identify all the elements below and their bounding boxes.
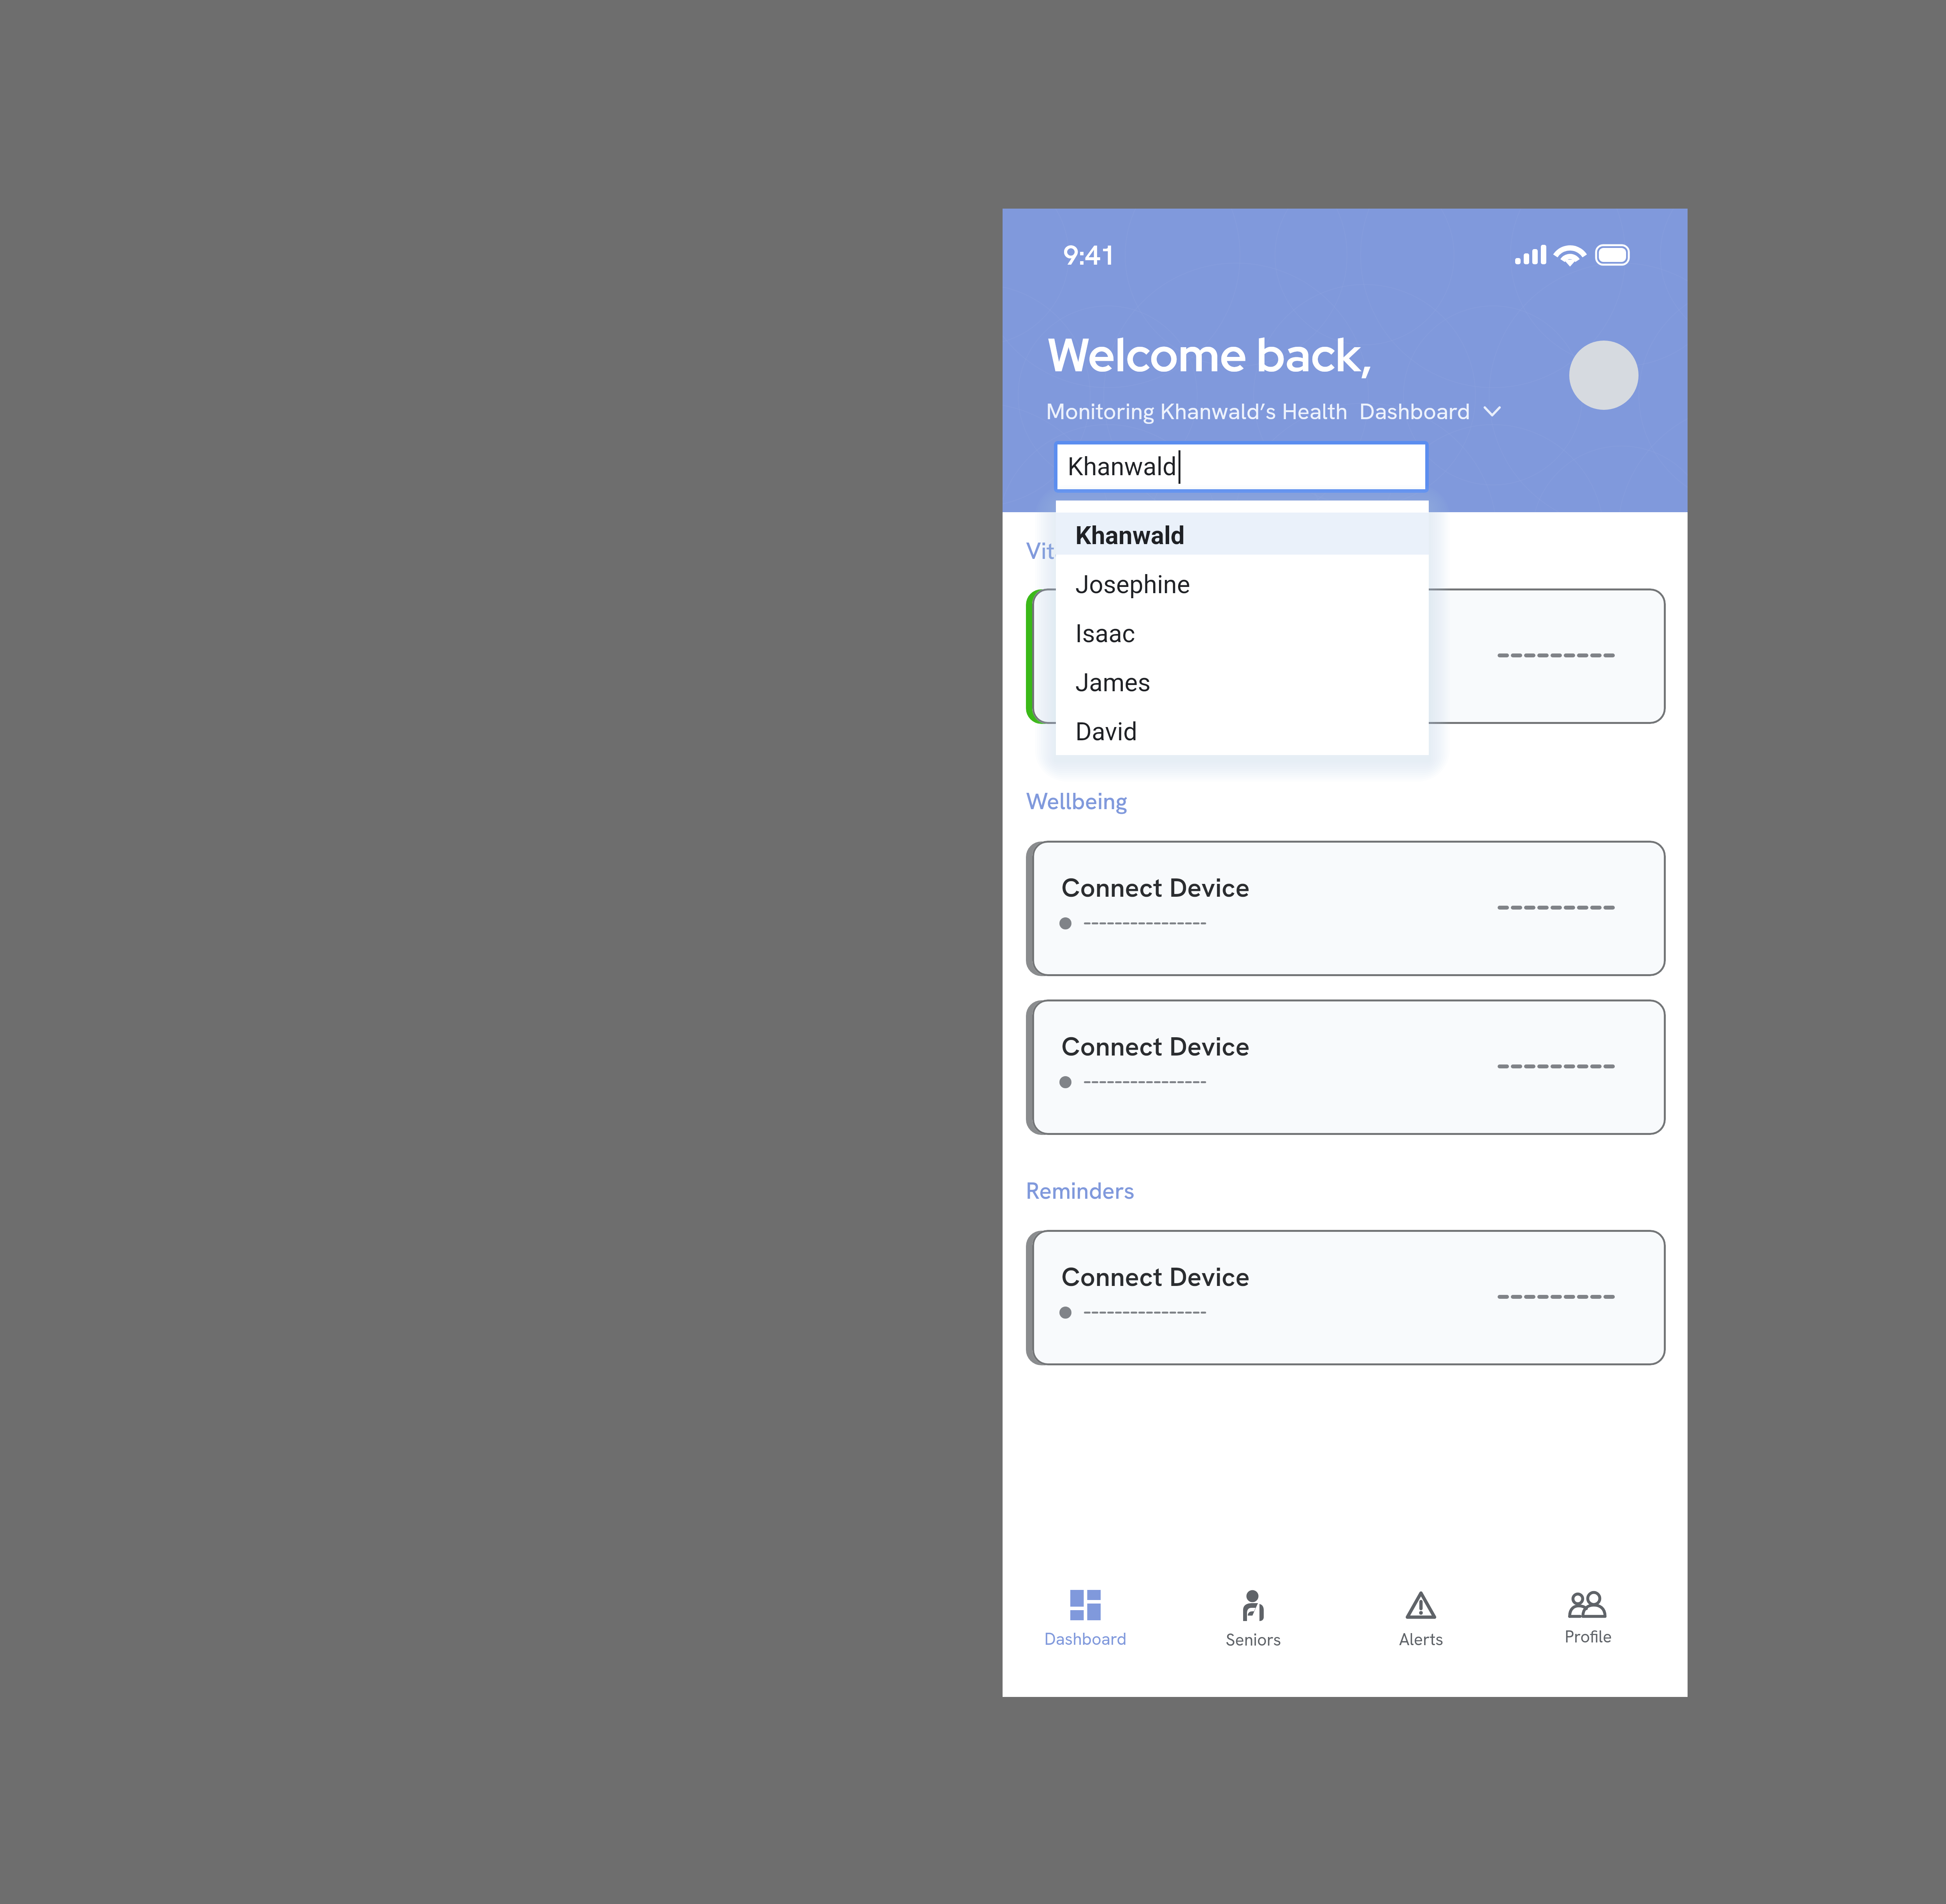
staticText: Profile xyxy=(1565,1626,1612,1648)
button[interactable]: Profile avatar xyxy=(1569,341,1639,410)
staticText: Connect Device xyxy=(1061,1029,1250,1064)
button[interactable]: Khanwald xyxy=(1056,513,1429,562)
button[interactable]: Isaac xyxy=(1056,611,1429,660)
staticText: Connect Device xyxy=(1061,870,1250,905)
button[interactable]: Dashboard xyxy=(1012,1565,1159,1654)
button[interactable]: Seniors xyxy=(1179,1565,1327,1654)
staticText: Seniors xyxy=(1226,1629,1281,1651)
button[interactable]: Connect Device xyxy=(1032,999,1666,1135)
staticText: Isaac xyxy=(1075,619,1135,648)
staticText: Monitoring Khanwald’s Health Dashboard xyxy=(1046,397,1470,426)
button[interactable]: Connect Device xyxy=(1032,1230,1666,1365)
staticText: Josephine xyxy=(1075,570,1190,599)
button[interactable]: Khanwald xyxy=(1057,444,1425,489)
button[interactable]: David xyxy=(1056,709,1429,758)
button[interactable]: Connect Device xyxy=(1032,588,1666,724)
staticText: Connect Device xyxy=(1061,1259,1250,1294)
staticText: Dashboard xyxy=(1044,1628,1127,1650)
staticText: Vitals xyxy=(1026,536,1084,566)
staticText: 9:41 xyxy=(1063,237,1116,273)
staticText: Alerts xyxy=(1399,1628,1444,1650)
staticText: Connect Device xyxy=(1061,618,1250,653)
staticText: Wellbeing xyxy=(1026,786,1128,816)
staticText: Reminders xyxy=(1026,1176,1135,1206)
staticText: Khanwald xyxy=(1075,521,1185,550)
button[interactable]: Josephine xyxy=(1056,562,1429,611)
button[interactable]: James xyxy=(1056,660,1429,709)
button[interactable]: Connect Device xyxy=(1032,841,1666,976)
staticText: James xyxy=(1075,668,1151,697)
staticText: Welcome back, xyxy=(1047,324,1373,386)
staticText: Khanwald xyxy=(1068,452,1177,481)
button[interactable]: Alerts xyxy=(1347,1565,1495,1654)
staticText: David xyxy=(1075,717,1137,746)
button[interactable]: Profile xyxy=(1514,1565,1662,1654)
